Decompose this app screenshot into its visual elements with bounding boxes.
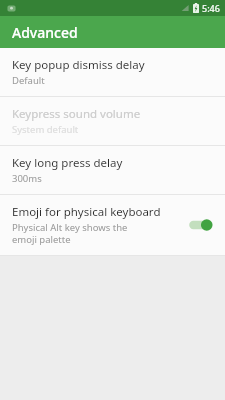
button[interactable]: Emoji for physical keyboard xyxy=(0,195,225,255)
staticText: 5:46 xyxy=(202,2,220,14)
staticText: Advanced xyxy=(12,23,78,42)
staticText: Key popup dismiss delay xyxy=(12,57,145,73)
staticText: Emoji for physical keyboard xyxy=(12,204,161,220)
staticText: Keypress sound volume xyxy=(12,106,141,122)
button[interactable]: Keypress sound volume xyxy=(0,97,225,145)
staticText: 300ms xyxy=(12,172,215,185)
staticText: Physical Alt key shows the emoji palette xyxy=(12,221,149,246)
staticText: Default xyxy=(12,74,215,87)
button[interactable]: Key popup dismiss delay xyxy=(0,48,225,96)
button[interactable]: Toggle emoji for physical keyboard xyxy=(185,215,215,235)
staticText: Key long press delay xyxy=(12,155,123,171)
staticText: System default xyxy=(12,123,215,136)
button[interactable]: Key long press delay xyxy=(0,146,225,194)
